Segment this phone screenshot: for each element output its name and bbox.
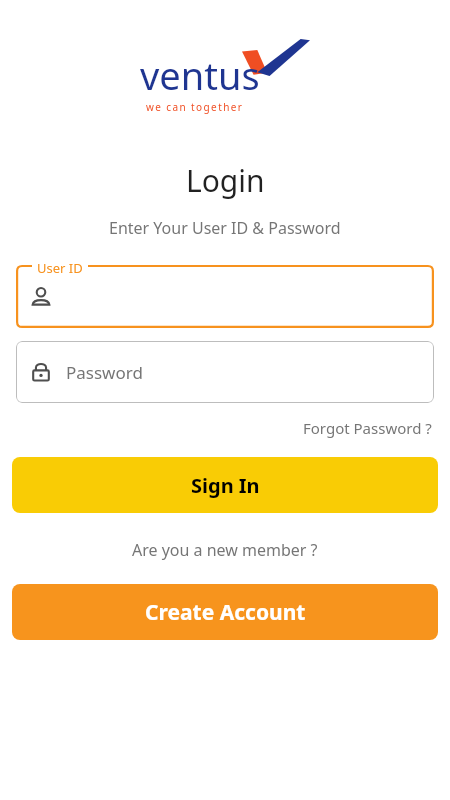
staticText: Create Account	[145, 598, 306, 627]
staticText: Forgot Password ?	[303, 418, 432, 438]
button[interactable]: Forgot Password ?	[301, 415, 434, 441]
button[interactable]: Create Account	[12, 584, 438, 640]
button[interactable]: Password	[16, 341, 434, 403]
staticText: Enter Your User ID & Password	[109, 217, 341, 239]
staticText: Are you a new member ?	[132, 539, 318, 561]
staticText: Login	[186, 160, 265, 201]
staticText: ventus	[140, 49, 260, 101]
staticText: Sign In	[191, 472, 260, 499]
staticText: Password	[66, 361, 143, 384]
staticText: we can together	[146, 100, 244, 114]
button[interactable]: Sign In	[12, 457, 438, 513]
other: User ID	[30, 286, 52, 308]
staticText: User ID	[37, 259, 83, 277]
button[interactable]: User ID	[16, 260, 434, 328]
